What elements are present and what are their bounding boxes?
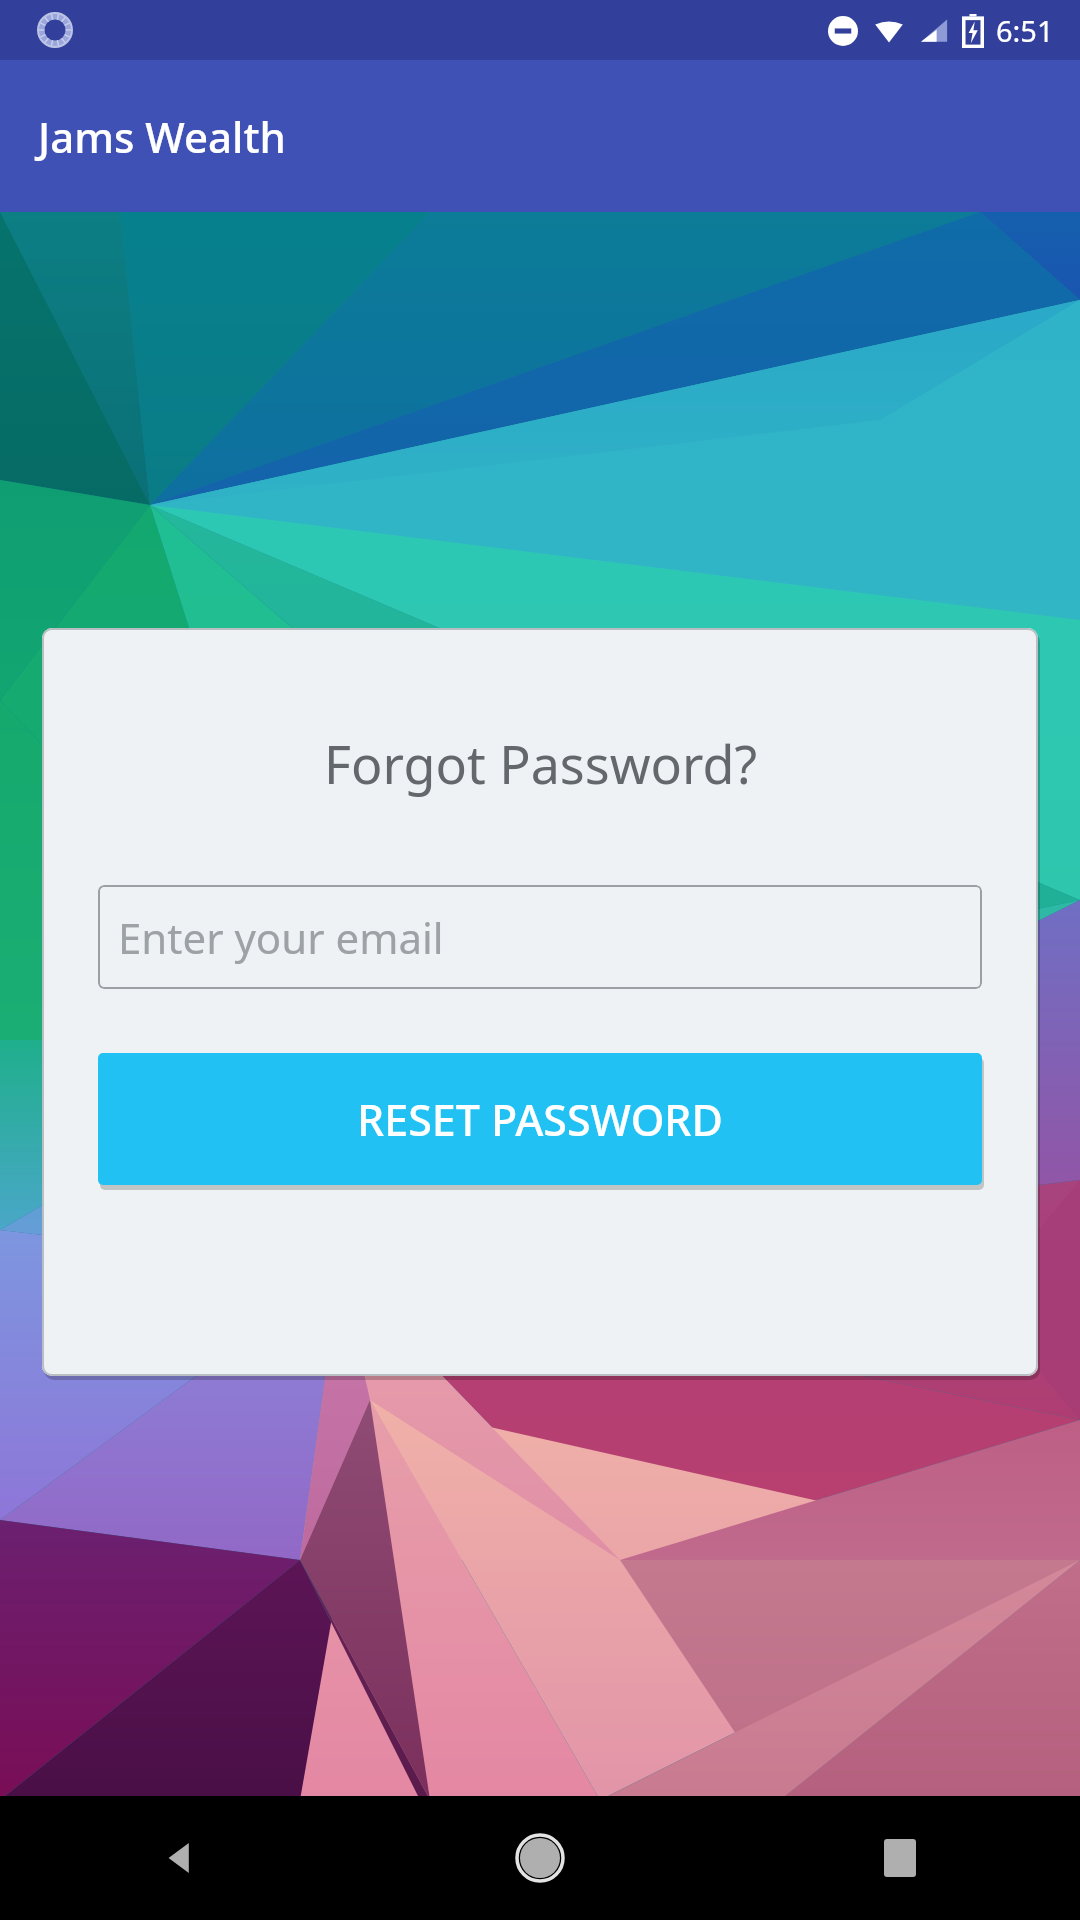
staticText: Jams Wealth xyxy=(38,108,286,165)
button[interactable]: Recent apps xyxy=(720,1796,1080,1920)
staticText: Enter your email xyxy=(118,909,444,966)
button[interactable]: RESET PASSWORD xyxy=(98,1053,982,1185)
button[interactable]: Back xyxy=(0,1796,360,1920)
button[interactable]: Home xyxy=(360,1796,720,1920)
staticText: Forgot Password? xyxy=(324,728,757,799)
staticText: RESET PASSWORD xyxy=(357,1090,723,1149)
staticText: 6:51 xyxy=(996,11,1054,50)
button[interactable]: Enter your email xyxy=(98,885,982,989)
